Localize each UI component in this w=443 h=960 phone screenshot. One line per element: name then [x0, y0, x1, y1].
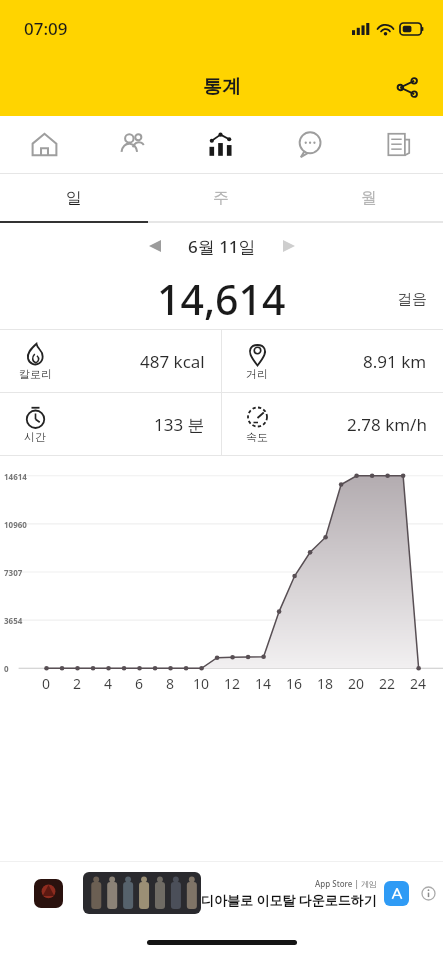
staticText: 월: [361, 188, 377, 208]
button[interactable]: 칼로리: [0, 330, 221, 392]
staticText: 칼로리: [19, 367, 52, 381]
button[interactable]: Ad information: [418, 883, 438, 903]
staticText: 0: [4, 663, 9, 674]
button[interactable]: 주: [147, 174, 295, 221]
staticText: 통계: [203, 75, 241, 99]
staticText: 20: [348, 674, 365, 693]
staticText: 6: [135, 674, 144, 693]
staticText: 일: [66, 188, 82, 208]
staticText: 22: [379, 674, 396, 693]
button[interactable]: 일: [0, 174, 147, 221]
staticText: 10: [193, 674, 210, 693]
button[interactable]: Friends: [88, 116, 176, 173]
staticText: 133 분: [154, 413, 205, 436]
button[interactable]: 시간: [0, 393, 221, 455]
button[interactable]: 월: [295, 174, 443, 221]
staticText: 16: [286, 674, 303, 693]
button[interactable]: 속도: [222, 393, 443, 455]
staticText: 2: [73, 674, 82, 693]
staticText: 18: [317, 674, 334, 693]
staticText: App Store | 게임: [315, 878, 377, 889]
staticText: 8.91 km: [363, 350, 427, 373]
staticText: 3654: [4, 615, 23, 626]
button[interactable]: Next day: [272, 229, 306, 263]
staticText: 디아블로 이모탈 다운로드하기: [201, 891, 377, 909]
staticText: 6월 11일: [188, 235, 256, 258]
button[interactable]: Previous day: [138, 229, 172, 263]
button[interactable]: Share: [385, 65, 429, 109]
staticText: 속도: [246, 430, 268, 444]
staticText: 4: [104, 674, 113, 693]
staticText: 10960: [4, 519, 27, 530]
button[interactable]: Advertisement: 디아블로 이모탈 다운로드하기: [0, 862, 443, 924]
staticText: 14,614: [157, 271, 286, 327]
staticText: 거리: [246, 367, 268, 381]
staticText: 14614: [4, 471, 27, 482]
button[interactable]: News: [354, 116, 443, 173]
staticText: 0: [42, 674, 51, 693]
staticText: 2.78 km/h: [347, 413, 427, 436]
staticText: 14: [255, 674, 272, 693]
staticText: 12: [224, 674, 241, 693]
staticText: 07:09: [24, 17, 68, 40]
staticText: 걸음: [397, 290, 427, 309]
staticText: 주: [213, 188, 229, 208]
staticText: 시간: [24, 430, 46, 444]
button[interactable]: 거리: [222, 330, 443, 392]
button[interactable]: Statistics: [176, 116, 265, 173]
staticText: 24: [410, 674, 427, 693]
staticText: 7307: [4, 567, 23, 578]
staticText: 487 kcal: [140, 350, 205, 373]
staticText: 8: [166, 674, 175, 693]
button[interactable]: Chat: [265, 116, 354, 173]
button[interactable]: Home: [0, 116, 88, 173]
